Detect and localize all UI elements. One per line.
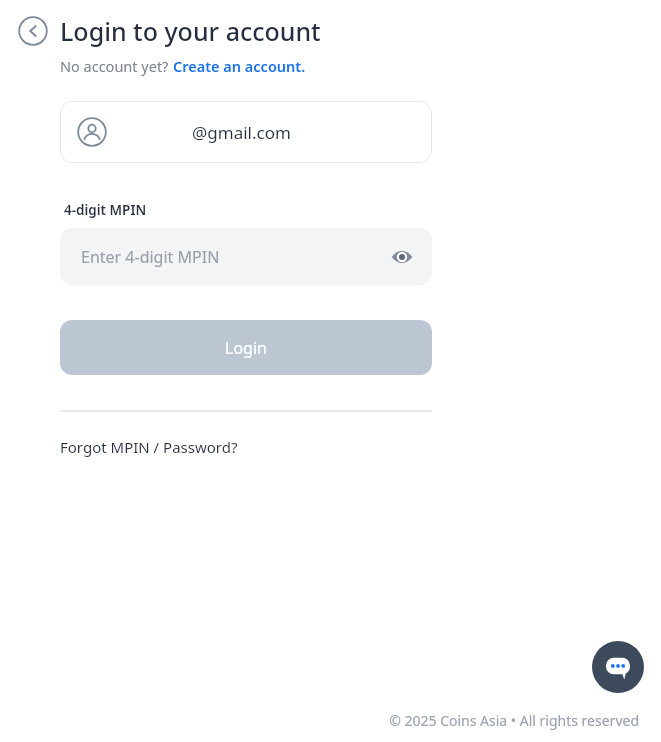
staticText: Forgot MPIN / Password? [60, 437, 238, 457]
button[interactable]: Forgot MPIN / Password? [60, 437, 238, 457]
staticText: Create an account. [173, 56, 306, 76]
button[interactable]: Login [60, 320, 432, 375]
button[interactable]: Show MPIN [386, 241, 418, 273]
staticText: © 2025 Coins Asia • All rights reserved [389, 711, 639, 730]
staticText: @gmail.com [192, 121, 291, 144]
staticText: Login to your account [60, 14, 321, 48]
button[interactable]: Back [16, 14, 50, 48]
staticText: No account yet? [60, 56, 173, 76]
button[interactable]: Enter 4-digit MPIN [60, 228, 432, 285]
button[interactable]: Chat support [592, 641, 644, 693]
staticText: Login [225, 337, 267, 359]
staticText: 4-digit MPIN [64, 201, 147, 219]
button[interactable]: Create an account. [173, 56, 306, 76]
staticText: Enter 4-digit MPIN [81, 246, 220, 268]
button[interactable]: @gmail.com [60, 101, 432, 163]
